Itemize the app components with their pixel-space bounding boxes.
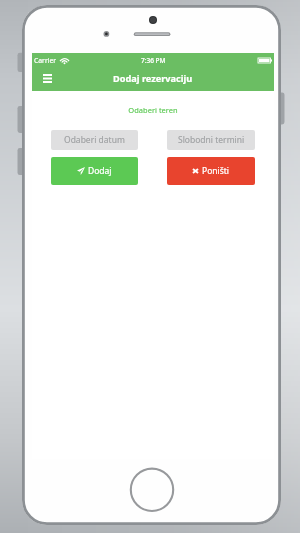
button[interactable]: Slobodni termini bbox=[167, 130, 255, 150]
staticText: Odaberi datum bbox=[64, 134, 125, 146]
button[interactable]: Poništi bbox=[167, 157, 255, 185]
staticText: Slobodni termini bbox=[178, 134, 245, 146]
staticText: 7:36 PM bbox=[141, 56, 166, 65]
staticText: Dodaj bbox=[88, 165, 112, 177]
button[interactable]: Menu bbox=[35, 66, 59, 90]
staticText: Poništi bbox=[202, 165, 230, 177]
button[interactable]: Dodaj bbox=[51, 157, 138, 185]
button[interactable]: Odaberi datum bbox=[51, 130, 138, 150]
staticText: Carrier bbox=[34, 56, 57, 65]
staticText: Odaberi teren bbox=[32, 105, 274, 115]
staticText: Dodaj rezervaciju bbox=[113, 72, 193, 85]
